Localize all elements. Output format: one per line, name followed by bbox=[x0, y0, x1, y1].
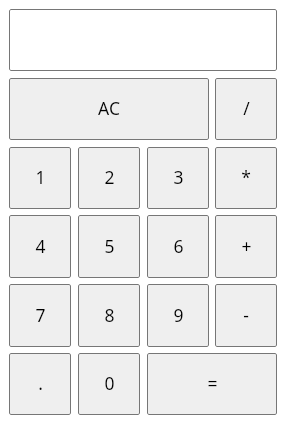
staticText: = bbox=[207, 371, 218, 395]
staticText: 6 bbox=[173, 234, 184, 258]
button[interactable]: Nine bbox=[147, 284, 209, 347]
button[interactable]: Multiply bbox=[215, 147, 277, 209]
other: Calculator display bbox=[9, 9, 277, 71]
staticText: 2 bbox=[104, 165, 115, 189]
staticText: 5 bbox=[104, 234, 115, 258]
button[interactable]: Three bbox=[147, 147, 209, 209]
button[interactable]: Plus bbox=[215, 215, 277, 278]
button[interactable]: Eight bbox=[78, 284, 140, 347]
staticText: 3 bbox=[173, 165, 184, 189]
button[interactable]: One bbox=[9, 147, 71, 209]
staticText: 0 bbox=[104, 371, 115, 395]
button[interactable]: Divide bbox=[215, 78, 277, 140]
button[interactable]: Minus bbox=[215, 284, 277, 347]
staticText: 4 bbox=[35, 234, 46, 258]
staticText: / bbox=[243, 96, 250, 120]
staticText: + bbox=[241, 234, 252, 258]
button[interactable]: Zero bbox=[78, 353, 140, 415]
button[interactable]: Six bbox=[147, 215, 209, 278]
button[interactable]: Equals bbox=[147, 353, 277, 415]
button[interactable]: Five bbox=[78, 215, 140, 278]
staticText: . bbox=[38, 371, 43, 395]
staticText: 8 bbox=[104, 303, 115, 327]
staticText: 7 bbox=[35, 303, 46, 327]
staticText: AC bbox=[98, 96, 120, 120]
staticText: 1 bbox=[35, 165, 46, 189]
button[interactable]: Seven bbox=[9, 284, 71, 347]
button[interactable]: All clear bbox=[9, 78, 209, 140]
button[interactable]: Two bbox=[78, 147, 140, 209]
button[interactable]: Decimal point bbox=[9, 353, 71, 415]
staticText: 9 bbox=[173, 303, 184, 327]
button[interactable]: Four bbox=[9, 215, 71, 278]
staticText: * bbox=[241, 165, 251, 189]
staticText: - bbox=[243, 303, 249, 327]
